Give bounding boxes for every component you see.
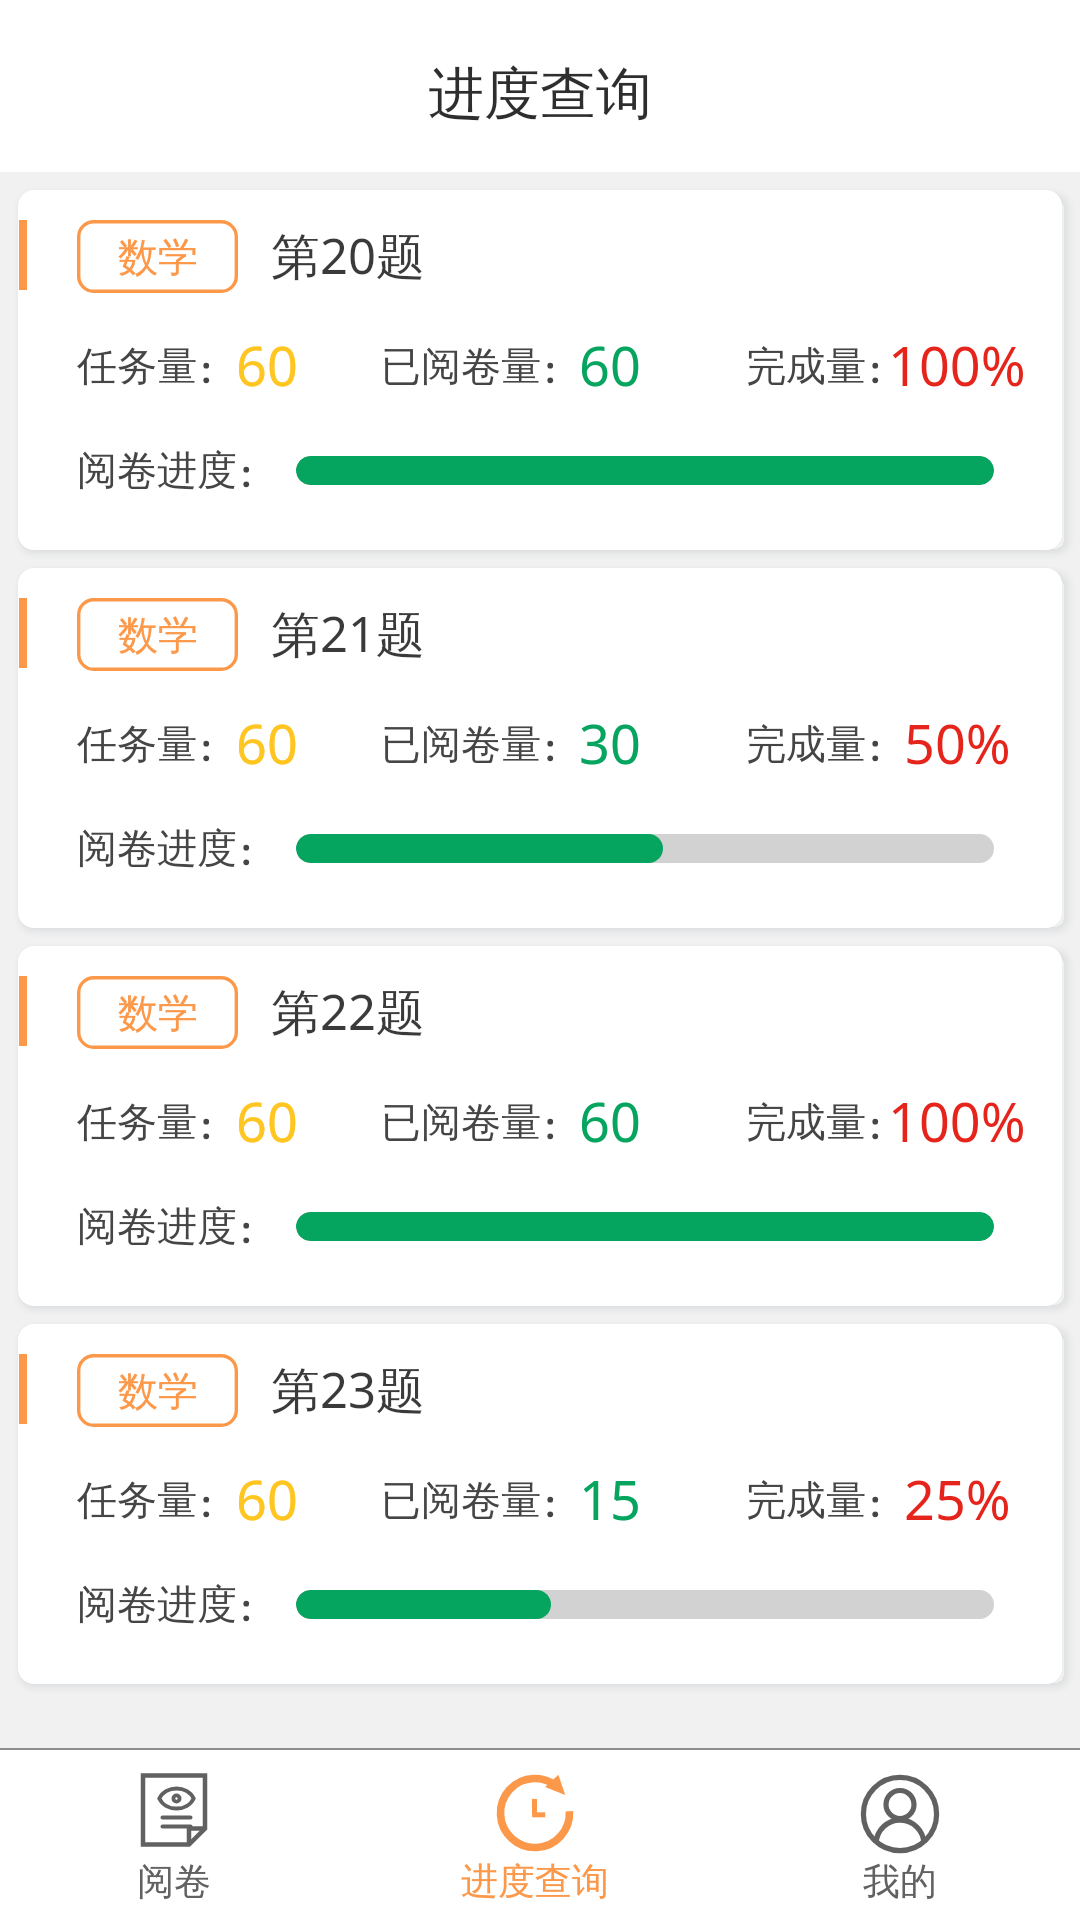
staticText: 已阅卷量 [381,341,541,391]
button[interactable]: 数学 [18,568,1062,928]
staticText: 第22题 [271,978,426,1045]
button[interactable]: 数学 [18,1324,1062,1684]
staticText: 第21题 [271,600,426,667]
button[interactable]: Grading [0,1750,360,1920]
staticText: 数学 [118,610,198,660]
staticText: 60 [236,328,298,388]
staticText: 任务量 [77,719,197,769]
staticText: 100% [888,1084,1026,1144]
staticText: 进度查询 [461,1858,609,1905]
button[interactable]: 数学 [18,190,1062,550]
staticText: 完成量 [746,719,866,769]
staticText: 30 [579,706,641,766]
staticText: 100% [888,328,1026,388]
staticText: 阅卷进度 [77,1201,237,1251]
staticText: 数学 [118,1366,198,1416]
staticText: 阅卷 [137,1858,211,1905]
staticText: 第20题 [271,222,426,289]
staticText: 已阅卷量 [381,1475,541,1525]
staticText: 任务量 [77,1097,197,1147]
other: Grading [131,1767,217,1853]
button[interactable]: Profile [720,1750,1080,1920]
staticText: 60 [579,328,641,388]
staticText: 50% [904,706,1011,766]
staticText: 已阅卷量 [381,719,541,769]
staticText: 阅卷进度 [77,445,237,495]
staticText: 进度查询 [428,59,652,130]
staticText: 我的 [863,1858,937,1905]
staticText: 60 [579,1084,641,1144]
button[interactable]: Progress [360,1750,720,1920]
staticText: 15 [579,1462,641,1522]
staticText: 完成量 [746,1097,866,1147]
staticText: 60 [236,1462,298,1522]
staticText: 60 [236,1084,298,1144]
other: Profile [857,1771,943,1857]
other: Progress [492,1770,578,1856]
staticText: 数学 [118,988,198,1038]
staticText: 完成量 [746,1475,866,1525]
staticText: 阅卷进度 [77,1579,237,1629]
staticText: 已阅卷量 [381,1097,541,1147]
staticText: 任务量 [77,1475,197,1525]
staticText: 第23题 [271,1356,426,1423]
button[interactable]: 数学 [18,946,1062,1306]
staticText: 阅卷进度 [77,823,237,873]
staticText: 完成量 [746,341,866,391]
staticText: 数学 [118,232,198,282]
staticText: 25% [904,1462,1011,1522]
staticText: 任务量 [77,341,197,391]
staticText: 60 [236,706,298,766]
